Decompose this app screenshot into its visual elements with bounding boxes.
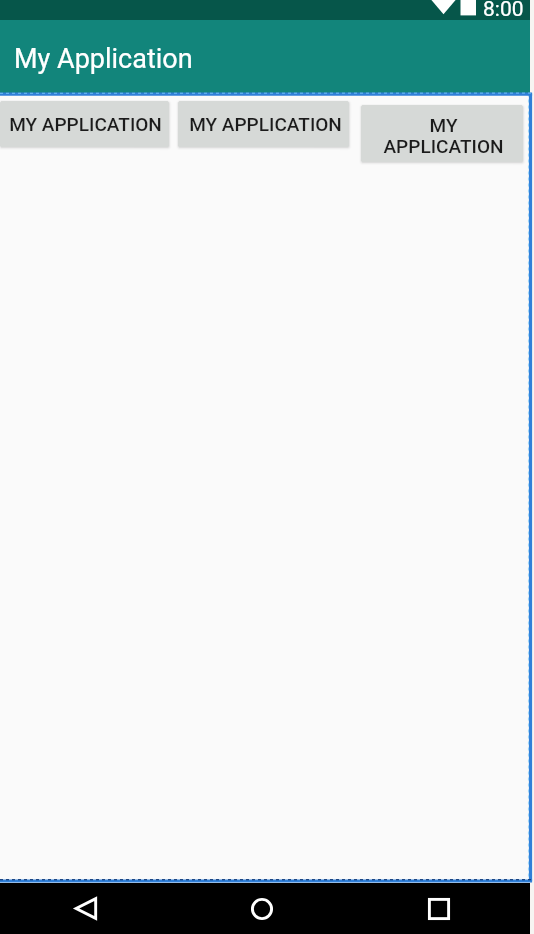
staticText: MY APPLICATION (189, 113, 342, 135)
button[interactable]: Home (227, 883, 297, 934)
button[interactable]: MY APPLICATION (178, 101, 349, 147)
staticText: MY APPLICATION (9, 113, 162, 135)
button[interactable]: MY APPLICATION (0, 101, 169, 147)
button[interactable]: Recent apps (404, 883, 474, 934)
button[interactable]: Back (50, 883, 121, 934)
button[interactable]: MY APPLICATION (361, 105, 523, 162)
staticText: 8:00 (483, 0, 524, 17)
staticText: My Application (14, 43, 193, 75)
staticText: MY APPLICATION (383, 114, 504, 157)
